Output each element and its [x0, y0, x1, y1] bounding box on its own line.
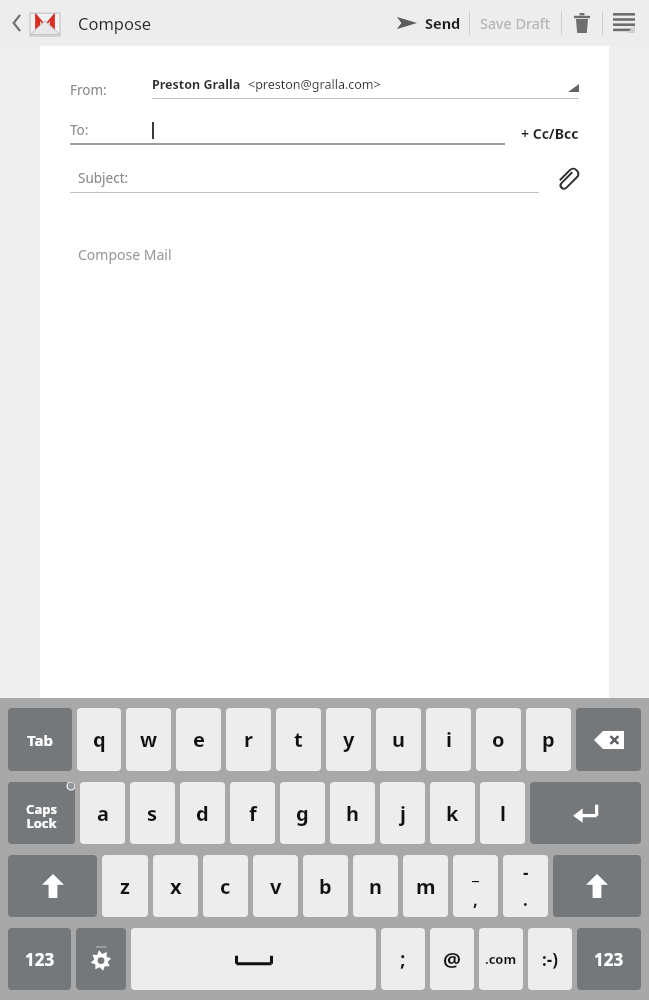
button[interactable]: Keyboard settings: [76, 928, 126, 990]
button[interactable]: @: [430, 928, 474, 990]
staticText: q: [93, 726, 106, 753]
button[interactable]: 123: [8, 928, 71, 990]
button[interactable]: a: [80, 782, 125, 844]
button[interactable]: s: [130, 782, 175, 844]
button[interactable]: q: [77, 708, 121, 771]
staticText: y: [343, 726, 355, 753]
button[interactable]: o: [476, 708, 521, 771]
staticText: ,: [473, 888, 478, 911]
staticText: _: [472, 861, 479, 884]
staticText: g: [296, 800, 309, 827]
button[interactable]: k: [430, 782, 475, 844]
button[interactable]: Space: [131, 928, 376, 990]
staticText: Compose Mail: [78, 245, 172, 264]
button[interactable]: Back to inbox: [6, 10, 64, 36]
staticText: Save Draft: [480, 13, 551, 33]
button[interactable]: w: [126, 708, 171, 771]
staticText: b: [319, 873, 332, 900]
staticText: o: [492, 726, 505, 753]
staticText: :-): [542, 948, 558, 971]
button[interactable]: :-): [528, 928, 572, 990]
staticText: Preston Gralla: [152, 76, 241, 93]
button[interactable]: Preston Gralla: [152, 76, 579, 99]
staticText: <preston@gralla.com>: [248, 76, 381, 93]
staticText: a: [97, 800, 109, 827]
staticText: u: [392, 726, 405, 753]
staticText: s: [147, 800, 158, 827]
staticText: r: [244, 726, 253, 753]
button[interactable]: y: [326, 708, 371, 771]
button[interactable]: Shift: [553, 855, 641, 917]
button[interactable]: n: [353, 855, 398, 917]
staticText: n: [369, 873, 382, 900]
button[interactable]: h: [330, 782, 375, 844]
staticText: -: [523, 861, 529, 884]
button[interactable]: .com: [479, 928, 523, 990]
button[interactable]: Discard: [562, 0, 602, 46]
button[interactable]: ;: [381, 928, 425, 990]
button[interactable]: Tab: [8, 708, 72, 771]
staticText: i: [446, 726, 452, 753]
button[interactable]: i: [426, 708, 471, 771]
button[interactable]: Caps Lock: [8, 782, 75, 844]
button[interactable]: f: [230, 782, 275, 844]
button[interactable]: g: [280, 782, 325, 844]
button[interactable]: + Cc/Bcc: [521, 124, 579, 145]
button[interactable]: j: [380, 782, 425, 844]
staticText: z: [120, 873, 130, 900]
button[interactable]: -: [503, 855, 548, 917]
staticText: t: [294, 726, 303, 753]
staticText: w: [140, 726, 158, 753]
button[interactable]: c: [203, 855, 248, 917]
staticText: .com: [485, 950, 517, 968]
staticText: f: [249, 800, 257, 827]
staticText: x: [170, 873, 182, 900]
staticText: 123: [594, 948, 624, 971]
button[interactable]: x: [153, 855, 198, 917]
button[interactable]: Backspace: [576, 708, 641, 771]
button[interactable]: To:: [70, 121, 505, 145]
button[interactable]: Subject:: [70, 169, 539, 193]
button[interactable]: v: [253, 855, 298, 917]
button[interactable]: Attach file: [555, 167, 579, 193]
staticText: d: [196, 800, 209, 827]
button[interactable]: u: [376, 708, 421, 771]
staticText: To:: [70, 121, 89, 139]
button[interactable]: Send: [389, 0, 469, 46]
staticText: From:: [70, 81, 107, 99]
button[interactable]: More options: [603, 0, 645, 46]
staticText: p: [542, 726, 555, 753]
button[interactable]: l: [480, 782, 525, 844]
staticText: h: [346, 800, 359, 827]
staticText: .: [523, 888, 528, 911]
button[interactable]: r: [226, 708, 271, 771]
staticText: + Cc/Bcc: [521, 124, 579, 143]
button[interactable]: t: [276, 708, 321, 771]
staticText: e: [193, 726, 205, 753]
staticText: Subject:: [78, 169, 129, 187]
button[interactable]: Compose Mail: [40, 245, 609, 264]
button[interactable]: Save Draft: [470, 0, 561, 46]
button[interactable]: _: [453, 855, 498, 917]
staticText: Tab: [27, 730, 53, 750]
button[interactable]: z: [102, 855, 148, 917]
button[interactable]: Shift: [8, 855, 97, 917]
button[interactable]: Enter: [530, 782, 641, 844]
button[interactable]: d: [180, 782, 225, 844]
staticText: c: [220, 873, 231, 900]
button[interactable]: m: [403, 855, 448, 917]
button[interactable]: 123: [577, 928, 641, 990]
staticText: j: [400, 800, 406, 827]
staticText: Send: [425, 13, 461, 33]
staticText: 123: [25, 948, 55, 971]
button[interactable]: p: [526, 708, 571, 771]
button[interactable]: b: [303, 855, 348, 917]
staticText: ;: [400, 946, 406, 972]
staticText: Compose: [78, 12, 152, 34]
staticText: k: [446, 800, 459, 827]
staticText: v: [270, 873, 282, 900]
staticText: @: [443, 946, 461, 973]
button[interactable]: e: [176, 708, 221, 771]
staticText: m: [416, 873, 436, 900]
staticText: Caps Lock: [26, 800, 57, 832]
